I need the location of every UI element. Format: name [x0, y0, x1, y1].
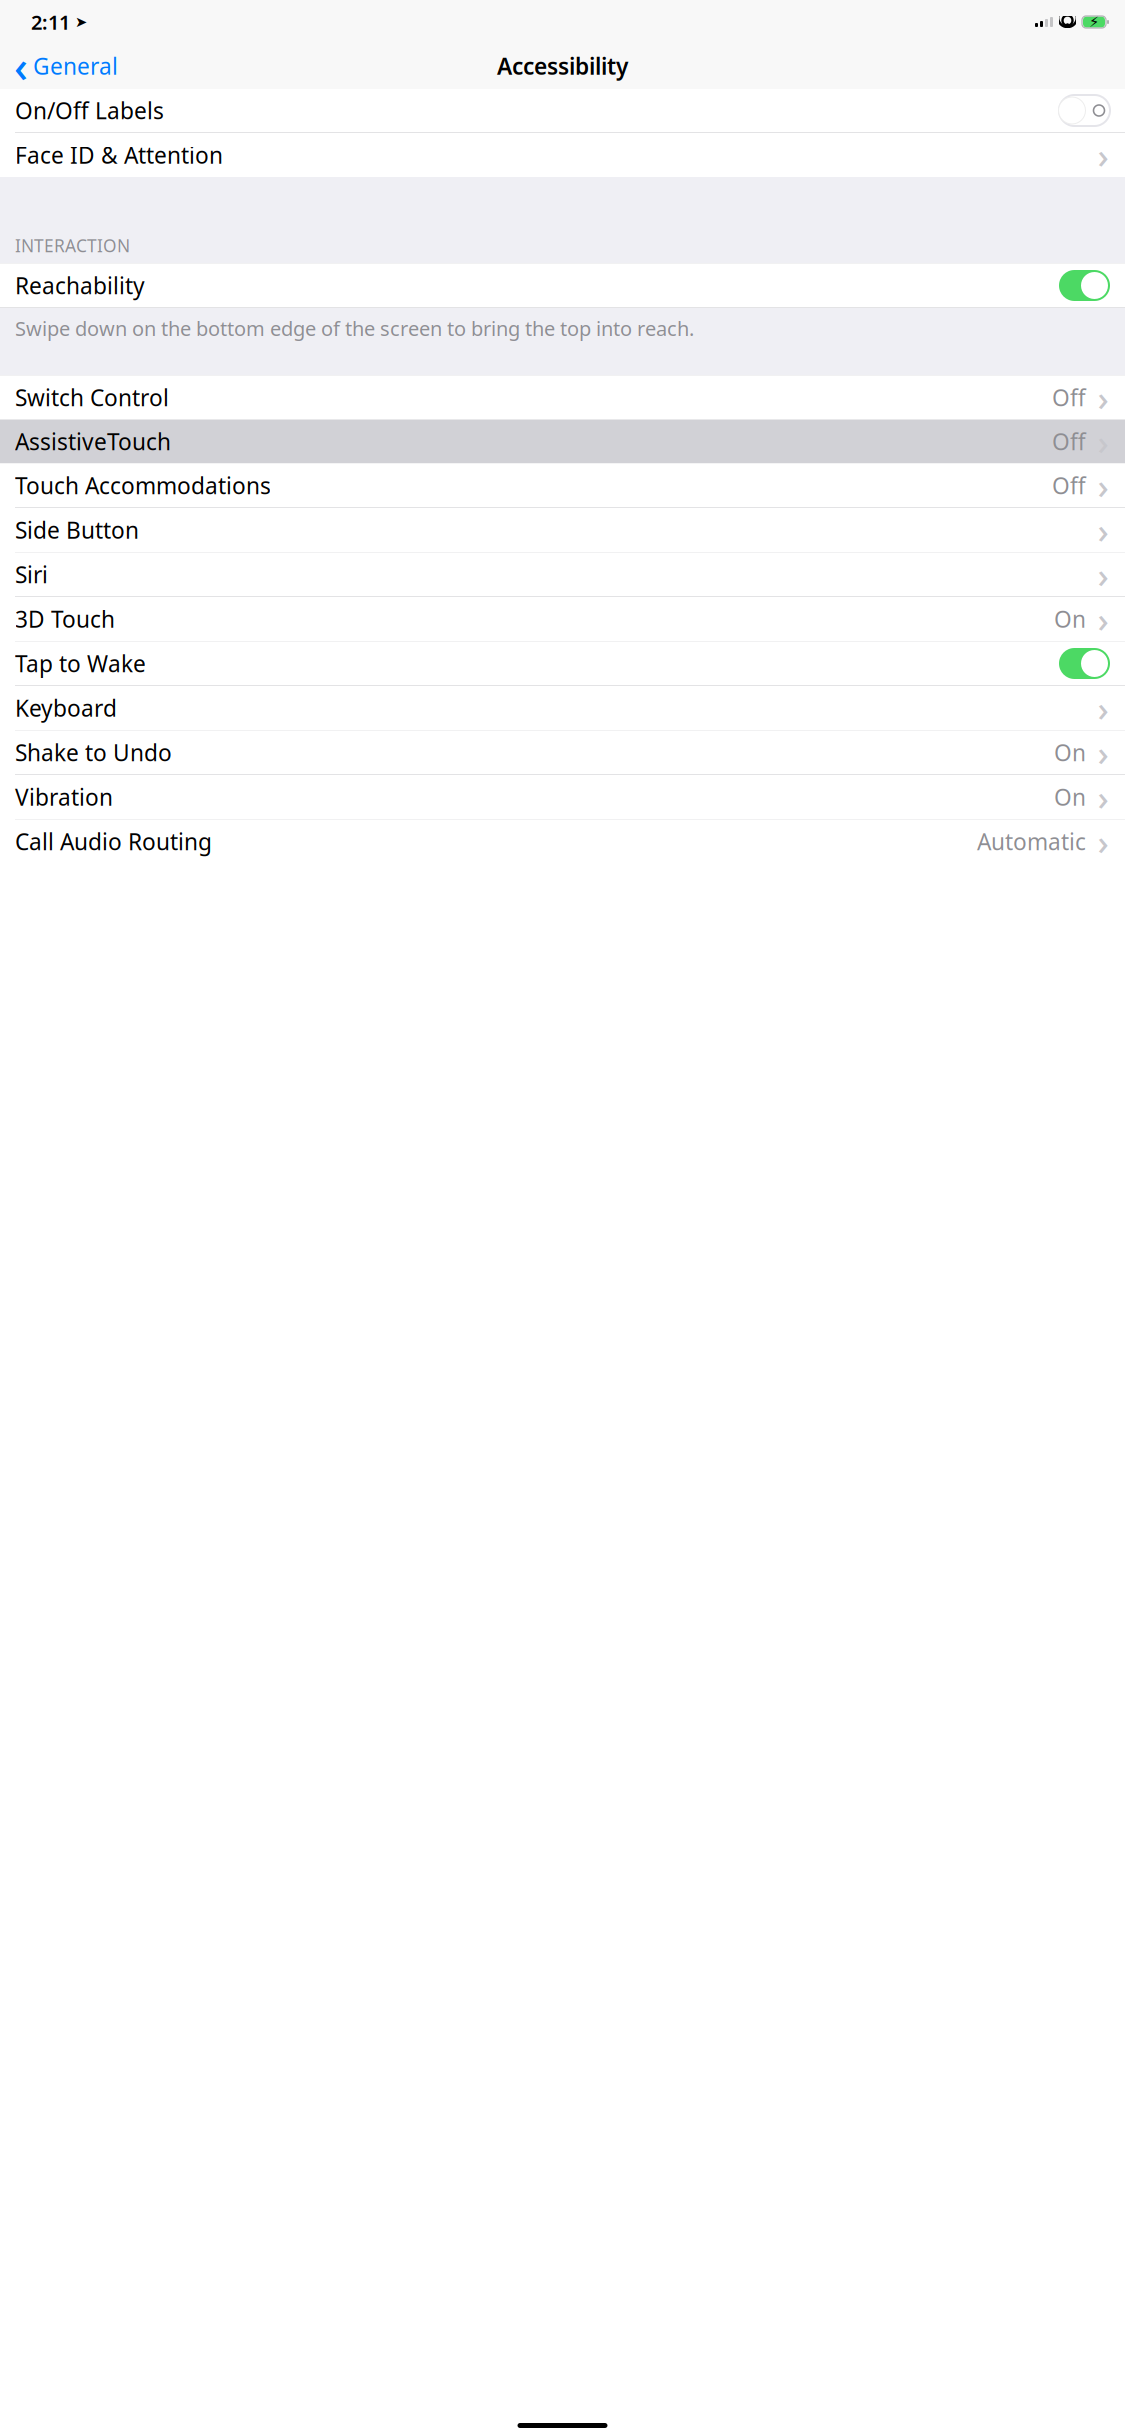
staticText: ›: [1097, 551, 1108, 597]
button[interactable]: Keyboard: [0, 686, 1125, 730]
staticText: Swipe down on the bottom edge of the scr…: [15, 315, 694, 342]
staticText: ›: [1097, 685, 1108, 731]
staticText: Touch Accommodations: [15, 470, 271, 500]
staticText: Keyboard: [15, 693, 117, 723]
staticText: 2:11: [31, 9, 70, 35]
staticText: ›: [1097, 374, 1108, 420]
staticText: ⚡︎: [1089, 14, 1099, 30]
staticText: ‹: [14, 38, 28, 94]
staticText: ›: [1097, 729, 1108, 775]
staticText: Accessibility: [497, 51, 628, 81]
staticText: On: [1054, 782, 1086, 812]
staticText: Call Audio Routing: [15, 826, 212, 856]
button[interactable]: Shake to Undo: [0, 730, 1125, 774]
staticText: Siri: [15, 559, 48, 589]
button[interactable]: Switch Control: [0, 375, 1125, 419]
staticText: Switch Control: [15, 382, 169, 412]
staticText: ›: [1097, 774, 1108, 820]
staticText: ›: [1097, 818, 1108, 864]
staticText: Off: [1052, 382, 1086, 412]
staticText: Vibration: [15, 782, 113, 812]
button[interactable]: Tap to Wake: [0, 641, 1125, 685]
button[interactable]: Touch Accommodations: [0, 463, 1125, 507]
staticText: ›: [1097, 132, 1108, 178]
staticText: Reachability: [15, 270, 145, 300]
staticText: On: [1054, 737, 1086, 767]
staticText: Off: [1052, 426, 1086, 456]
staticText: INTERACTION: [15, 234, 130, 257]
button[interactable]: ‹: [6, 44, 126, 88]
staticText: Off: [1052, 470, 1086, 500]
staticText: ›: [1097, 418, 1108, 464]
button[interactable]: Reachability: [0, 263, 1125, 307]
staticText: ›: [1097, 462, 1108, 508]
staticText: Tap to Wake: [15, 648, 146, 678]
staticText: On: [1054, 604, 1086, 634]
button[interactable]: Face ID & Attention: [0, 133, 1125, 177]
staticText: ➤: [75, 14, 87, 30]
button[interactable]: On/Off Labels: [0, 88, 1125, 132]
staticText: ›: [1097, 507, 1108, 553]
button[interactable]: Siri: [0, 552, 1125, 596]
staticText: Shake to Undo: [15, 737, 172, 767]
staticText: ›: [1097, 596, 1108, 642]
button[interactable]: Call Audio Routing: [0, 819, 1125, 863]
staticText: Side Button: [15, 515, 139, 545]
staticText: AssistiveTouch: [15, 426, 171, 456]
staticText: Automatic: [977, 826, 1086, 856]
staticText: General: [33, 51, 118, 81]
button[interactable]: Side Button: [0, 508, 1125, 552]
staticText: 3D Touch: [15, 604, 115, 634]
staticText: Face ID & Attention: [15, 140, 223, 170]
button[interactable]: Vibration: [0, 775, 1125, 819]
staticText: On/Off Labels: [15, 95, 164, 125]
button[interactable]: 3D Touch: [0, 597, 1125, 641]
button[interactable]: AssistiveTouch: [0, 419, 1125, 463]
